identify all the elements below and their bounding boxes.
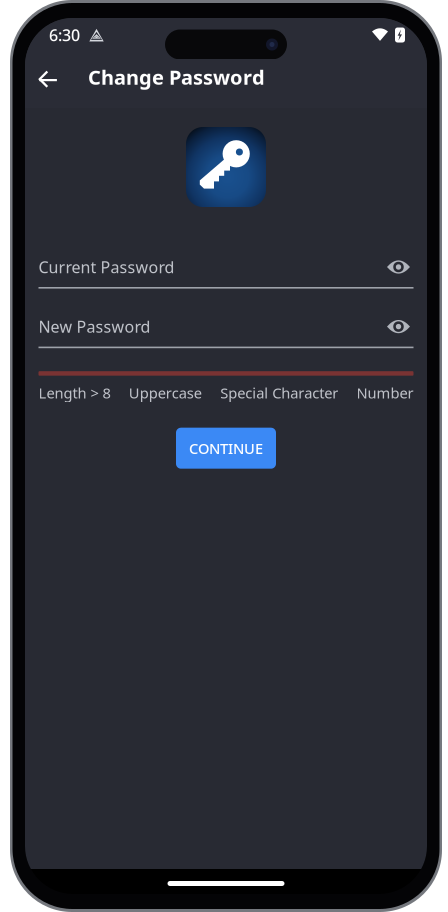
button[interactable]: Show password xyxy=(383,254,413,280)
button[interactable]: CONTINUE xyxy=(176,428,276,469)
staticText: CONTINUE xyxy=(189,438,263,458)
staticText: Length > 8 xyxy=(38,383,110,402)
staticText: 6:30 xyxy=(49,24,80,46)
staticText: Number xyxy=(356,383,413,402)
staticText: Special Character xyxy=(220,383,338,402)
button[interactable]: Back xyxy=(30,59,66,95)
staticText: Uppercase xyxy=(129,383,202,402)
staticText: Current Password xyxy=(38,256,174,278)
staticText: New Password xyxy=(38,316,150,337)
staticText: Change Password xyxy=(88,64,265,90)
button[interactable]: Show password xyxy=(383,314,413,340)
